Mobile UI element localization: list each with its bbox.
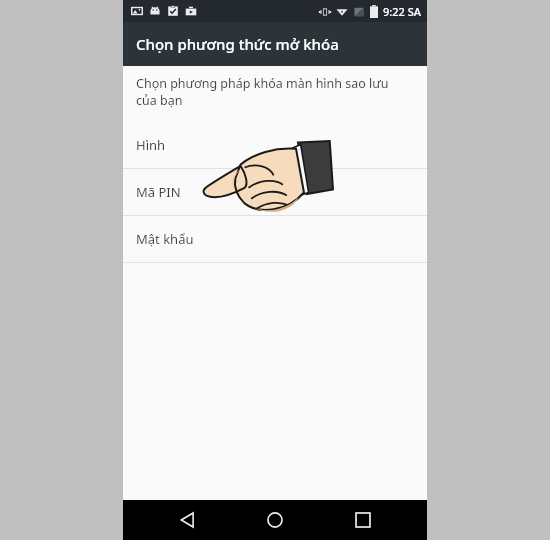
staticText: Mật khẩu	[136, 230, 194, 248]
staticText: 9:22 SA	[383, 4, 421, 19]
button[interactable]: Recent apps	[340, 500, 386, 540]
button[interactable]: Hình	[123, 122, 427, 168]
staticText: Mã PIN	[136, 183, 181, 201]
button[interactable]: Mã PIN	[123, 169, 427, 215]
staticText: Chọn phương thức mở khóa	[136, 34, 339, 54]
staticText: Hình	[136, 136, 166, 154]
button[interactable]: Home	[252, 500, 298, 540]
button[interactable]: Mật khẩu	[123, 216, 427, 262]
staticText: Chọn phương pháp khóa màn hình sao lưu c…	[136, 75, 389, 109]
button[interactable]: Back	[165, 500, 211, 540]
